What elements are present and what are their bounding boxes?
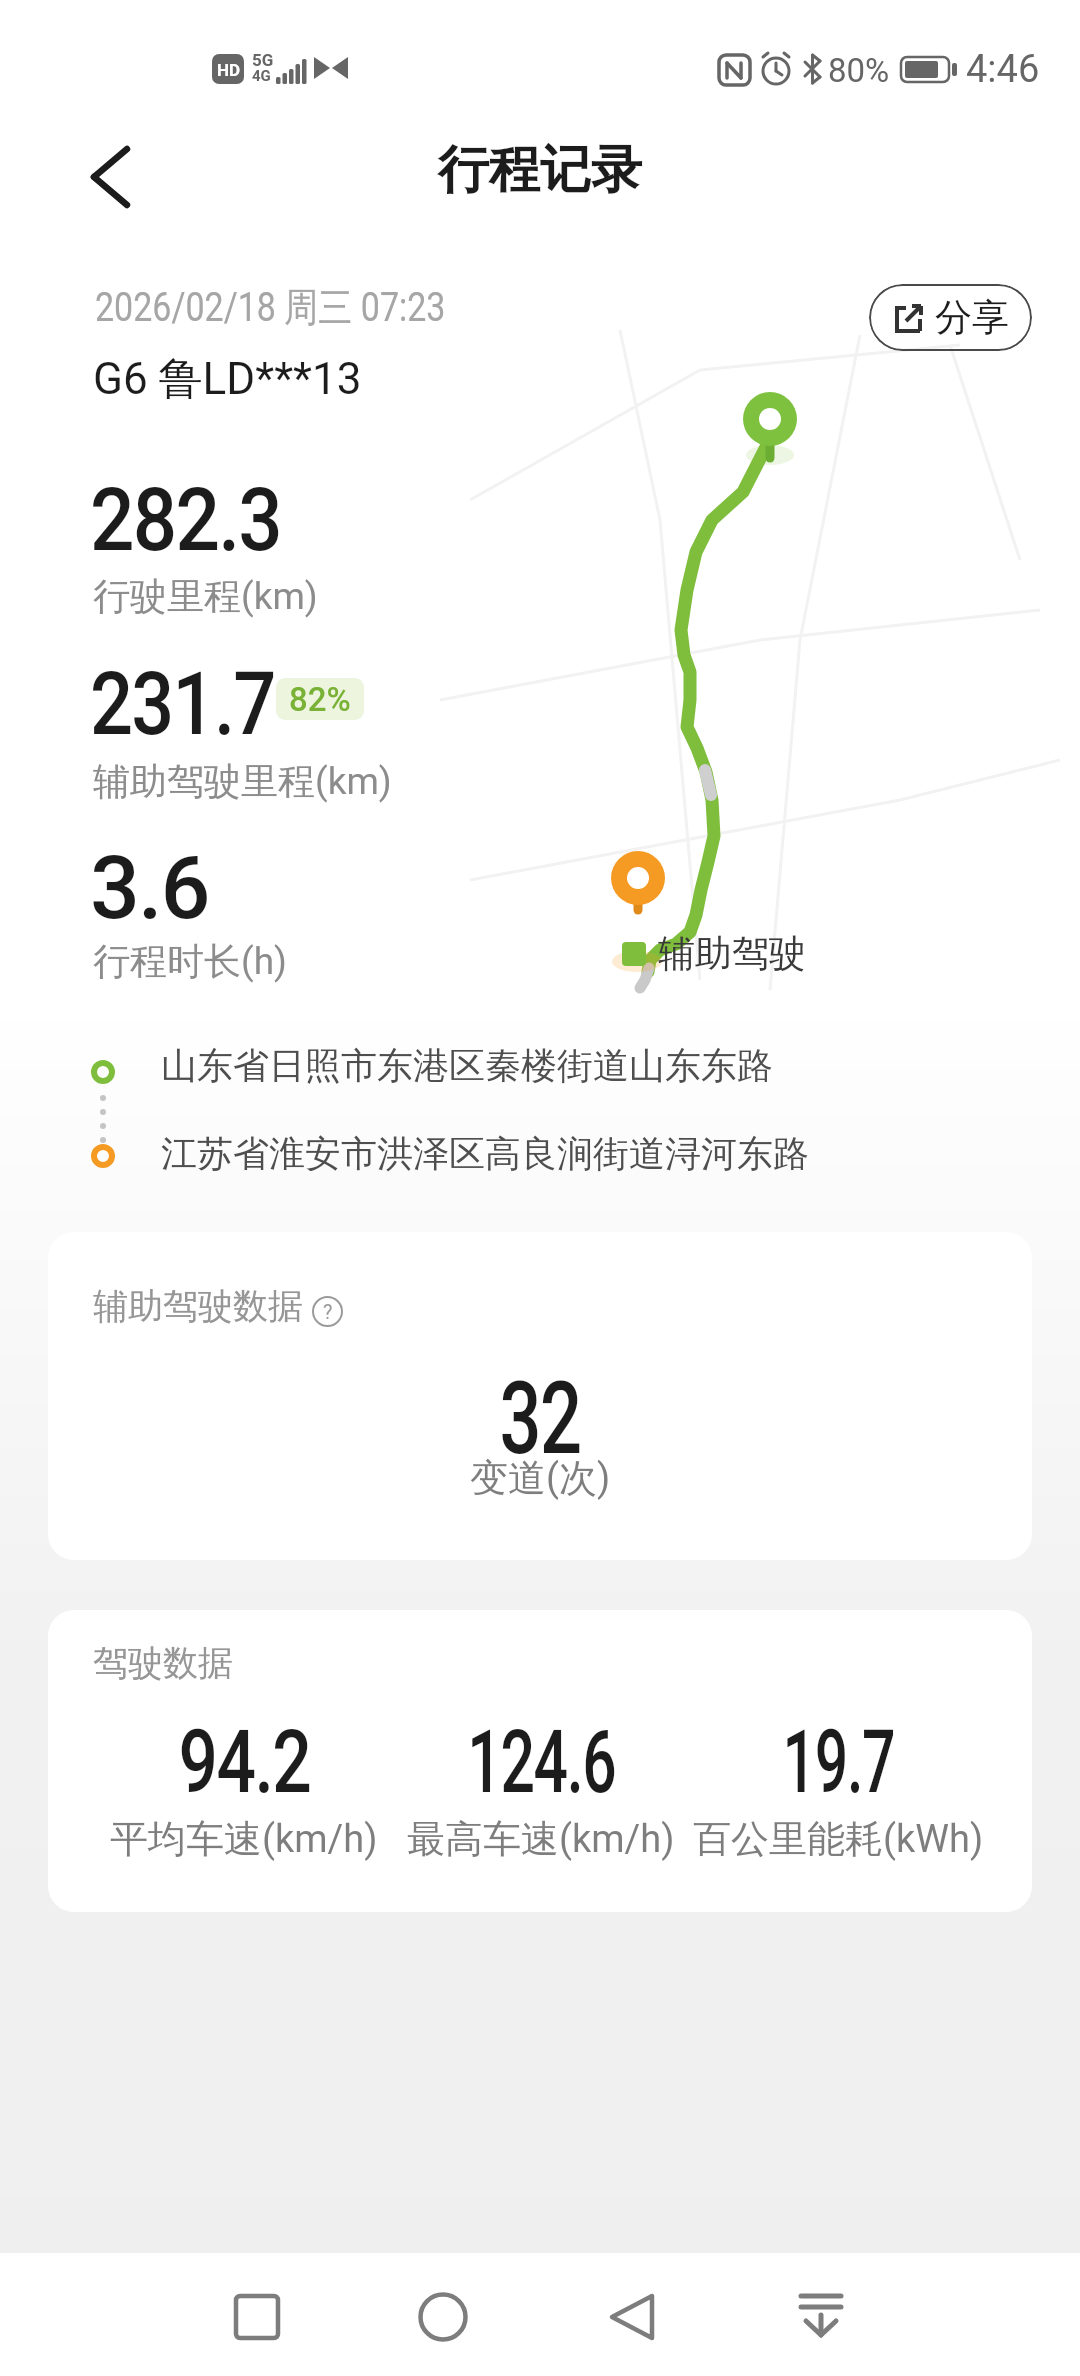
staticText: 行驶里程(km) <box>93 573 318 620</box>
button[interactable] <box>585 2270 680 2365</box>
button[interactable] <box>773 2270 868 2365</box>
button[interactable]: ? <box>312 1296 343 1327</box>
staticText: 平均车速(km/h) <box>110 1815 378 1863</box>
staticText: 驾驶数据 <box>93 1641 233 1685</box>
staticText: 最高车速(km/h) <box>407 1815 675 1863</box>
staticText: 282.3 <box>90 468 281 571</box>
staticText: 82% <box>289 680 351 719</box>
staticText: 2026/02/18 周三 07:23 <box>95 282 446 332</box>
button[interactable]: 分享 <box>869 284 1032 351</box>
staticText: 辅助驾驶数据 <box>93 1284 303 1328</box>
staticText: 80% <box>828 51 890 90</box>
staticText: 19.7 <box>783 1710 894 1813</box>
staticText: ? <box>323 1300 333 1323</box>
staticText: 百公里能耗(kWh) <box>693 1815 984 1863</box>
button[interactable] <box>210 2270 305 2365</box>
staticText: 32 <box>176 1360 904 1477</box>
staticText: G6 鲁LD***13 <box>93 352 362 407</box>
staticText: 3.6 <box>90 836 209 939</box>
button[interactable] <box>396 2270 491 2365</box>
button[interactable] <box>62 135 147 220</box>
staticText: 231.7 <box>90 652 275 755</box>
staticText: 江苏省淮安市洪泽区高良涧街道浔河东路 <box>161 1131 809 1176</box>
staticText: 4G <box>252 67 271 85</box>
staticText: 行程记录 <box>0 138 1080 202</box>
staticText: 辅助驾驶 <box>658 930 806 977</box>
staticText: 行程时长(h) <box>93 938 287 985</box>
staticText: HD <box>217 60 241 80</box>
staticText: 94.2 <box>178 1710 310 1813</box>
staticText: 山东省日照市东港区秦楼街道山东东路 <box>161 1043 773 1088</box>
staticText: 辅助驾驶里程(km) <box>93 758 392 805</box>
staticText: 分享 <box>935 294 1009 341</box>
staticText: 变道(次) <box>48 1454 1032 1502</box>
staticText: 5G <box>252 50 274 70</box>
staticText: 4:46 <box>966 47 1040 92</box>
staticText: 124.6 <box>467 1710 616 1813</box>
